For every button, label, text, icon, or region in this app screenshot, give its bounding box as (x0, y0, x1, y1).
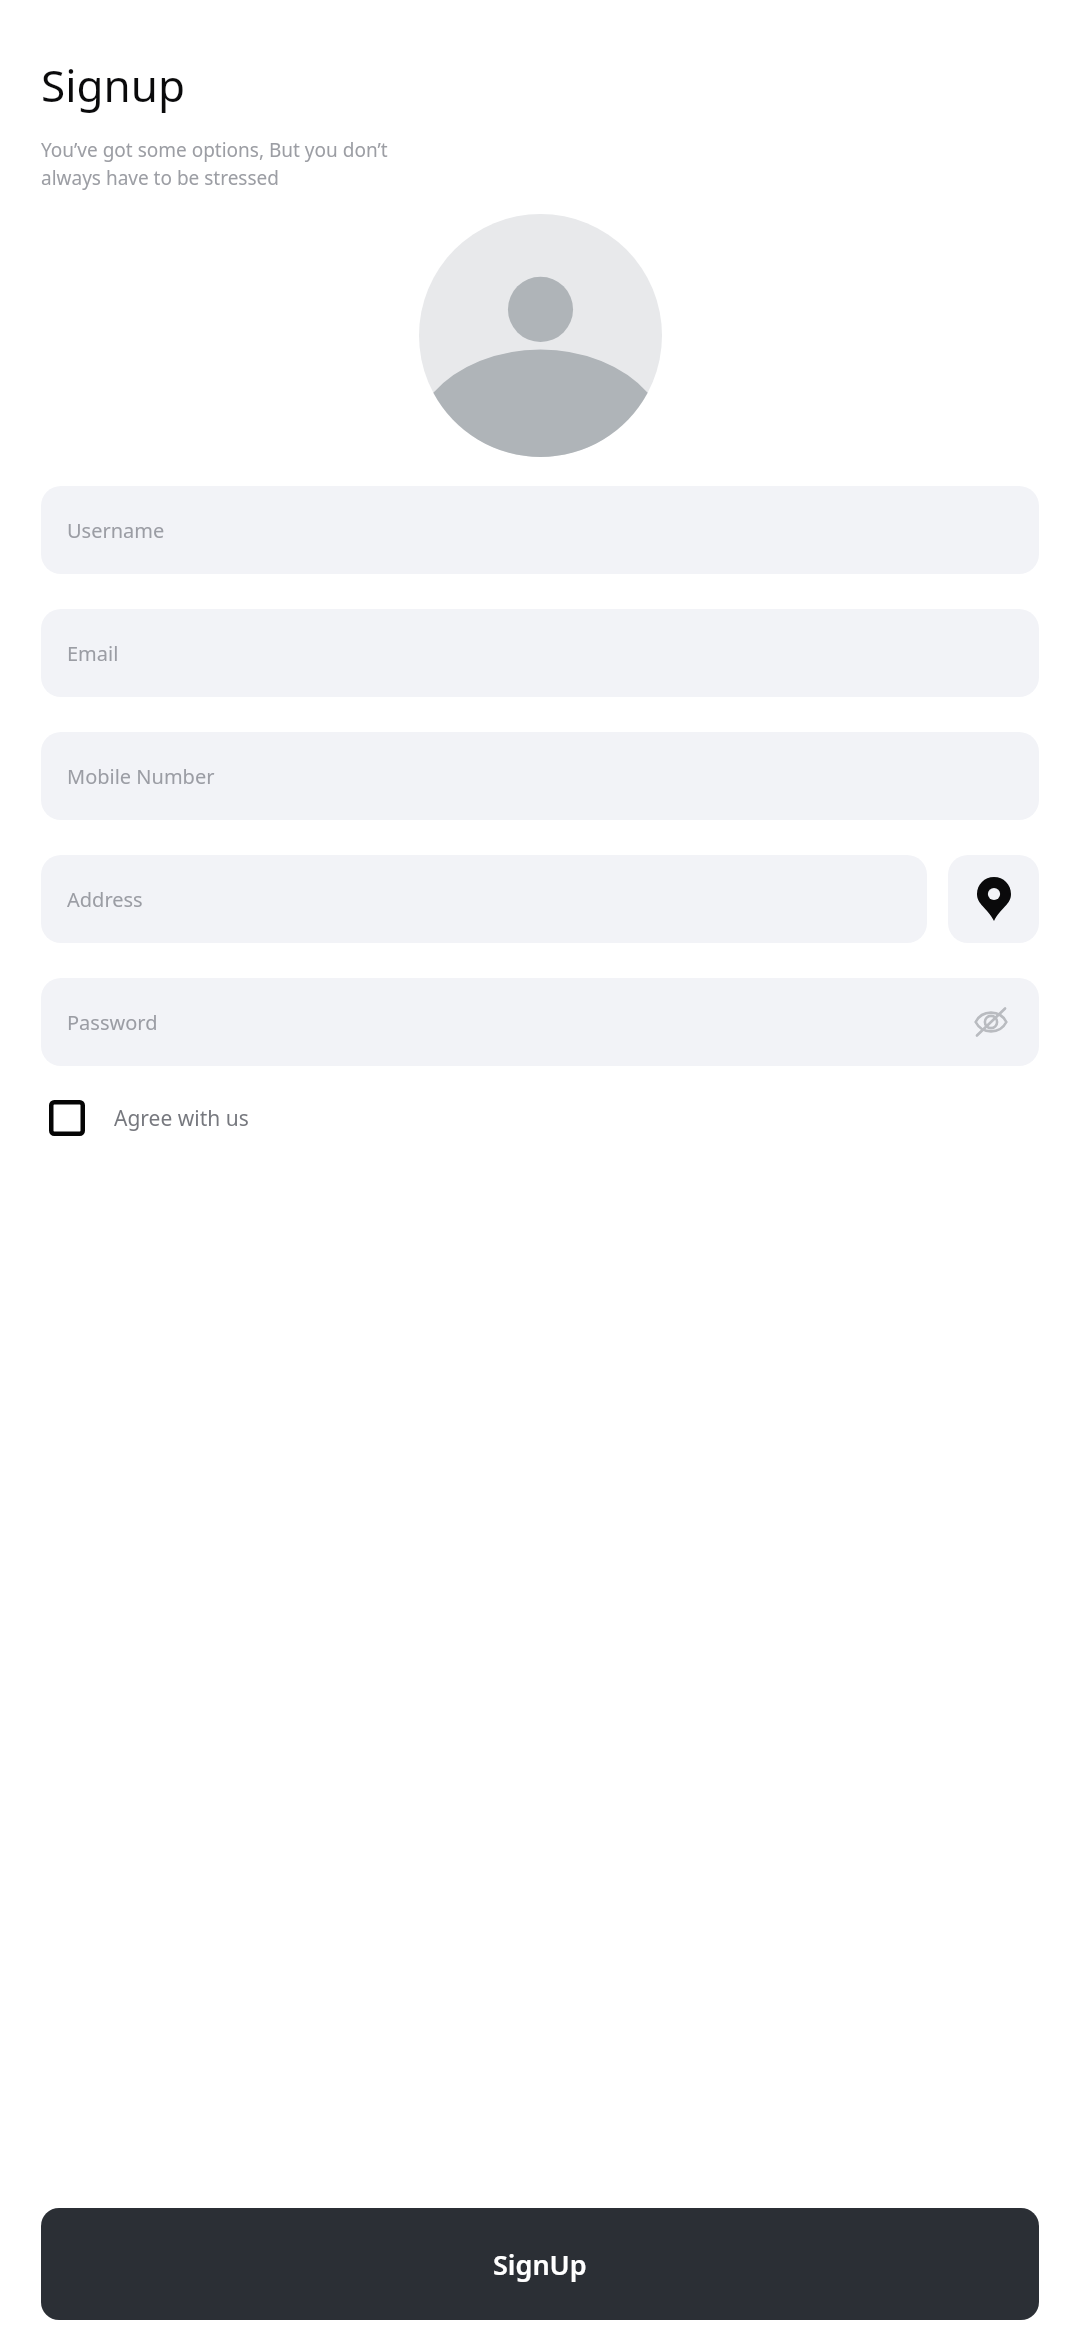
staticText: Signup (41, 55, 186, 115)
button[interactable]: Email (41, 609, 1039, 697)
staticText: Address (67, 886, 143, 913)
staticText: Email (67, 640, 119, 667)
staticText: SignUp (493, 2246, 587, 2283)
button[interactable]: Address (41, 855, 927, 943)
staticText: Password (67, 1009, 158, 1036)
staticText: Mobile Number (67, 763, 215, 790)
staticText: Username (67, 517, 165, 544)
staticText: Agree with us (114, 1104, 249, 1133)
button[interactable]: Username (41, 486, 1039, 574)
button[interactable]: Pick location (948, 855, 1039, 943)
button[interactable]: SignUp (41, 2208, 1039, 2320)
staticText: You’ve got some options, But you don’t a… (41, 137, 388, 191)
button[interactable]: Show password (969, 1000, 1013, 1044)
button[interactable]: Password (41, 978, 1039, 1066)
button[interactable]: Agree with us (45, 1086, 253, 1150)
button[interactable]: Mobile Number (41, 732, 1039, 820)
